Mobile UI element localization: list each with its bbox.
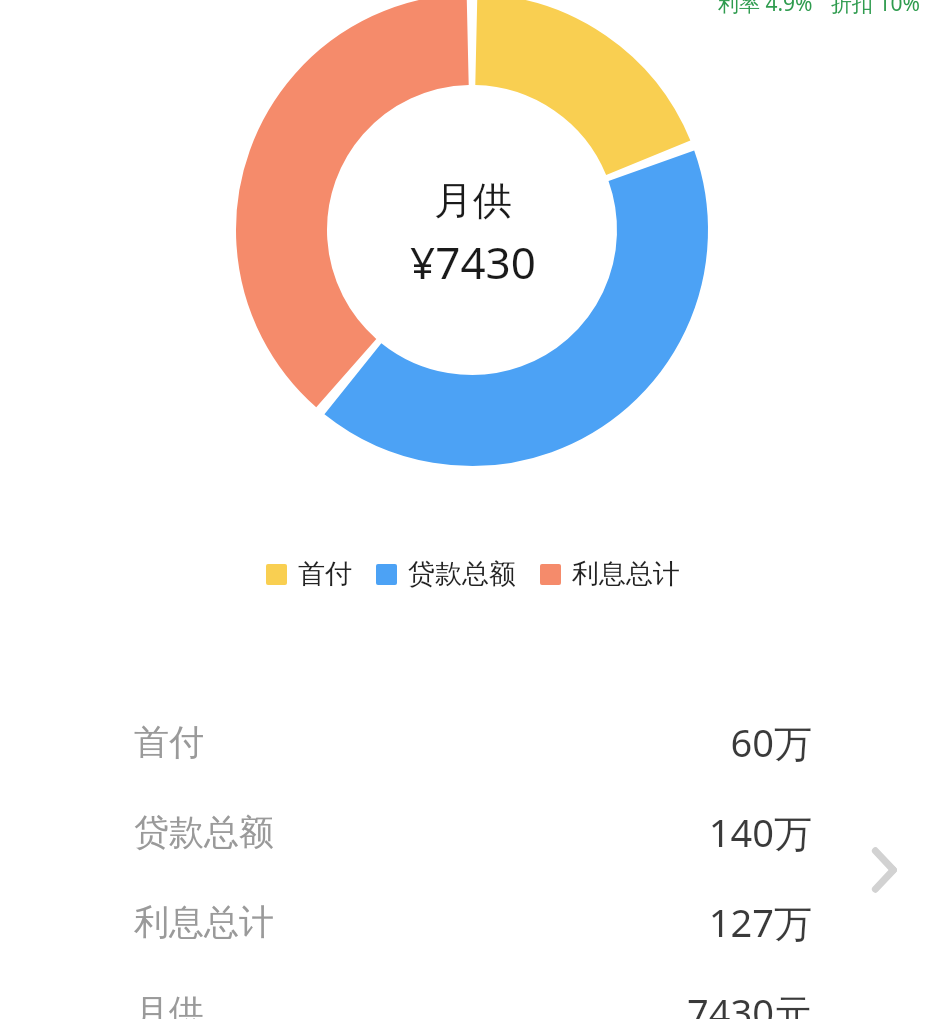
button[interactable]: 月供 xyxy=(134,986,812,1019)
staticText: 月供 xyxy=(134,990,204,1019)
staticText: 利息总计 xyxy=(572,557,680,591)
staticText: 127万 xyxy=(708,896,812,948)
staticText: 7430元 xyxy=(687,986,812,1019)
button[interactable]: 利息总计 xyxy=(134,896,812,948)
button[interactable]: 贷款总额 xyxy=(134,806,812,858)
staticText: 贷款总额 xyxy=(408,557,516,591)
staticText: 140万 xyxy=(708,806,812,858)
button[interactable]: 首付 xyxy=(266,557,352,591)
button[interactable]: 首付 xyxy=(134,716,812,768)
staticText: 贷款总额 xyxy=(134,810,274,854)
button[interactable]: 贷款总额 xyxy=(376,557,516,591)
button[interactable]: 利息总计 xyxy=(540,557,680,591)
staticText: 折扣 10% xyxy=(831,0,920,18)
staticText: 首付 xyxy=(134,720,204,764)
staticText: 月供 xyxy=(434,176,512,225)
button[interactable]: Next xyxy=(854,833,916,907)
staticText: ¥7430 xyxy=(410,232,536,292)
staticText: 60万 xyxy=(730,716,812,768)
staticText: 利息总计 xyxy=(134,900,274,944)
staticText: 首付 xyxy=(298,557,352,591)
button[interactable]: Rate info xyxy=(718,0,920,18)
staticText: 利率 4.9% xyxy=(718,0,813,18)
